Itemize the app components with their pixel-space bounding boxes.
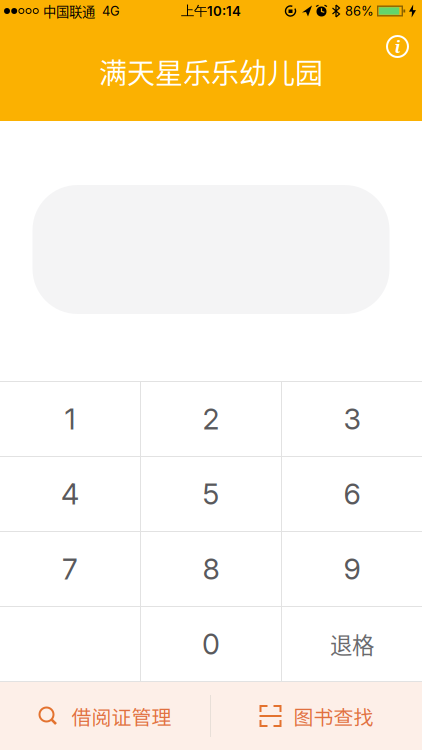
staticText: 0	[202, 627, 220, 661]
staticText: i	[394, 35, 400, 58]
staticText: 1	[64, 402, 75, 436]
button[interactable]: 0	[141, 607, 281, 681]
staticText: 8	[202, 552, 219, 586]
button[interactable]: 信息	[386, 0, 422, 58]
staticText: 满天星乐乐幼儿园	[99, 51, 323, 92]
staticText: 9	[343, 552, 360, 586]
button[interactable]: 图书查找	[211, 682, 422, 750]
button[interactable]: 5	[141, 457, 281, 531]
staticText: 6	[343, 477, 360, 511]
staticText: 上午10:14	[181, 3, 241, 19]
staticText: 3	[343, 402, 360, 436]
button[interactable]: 7	[0, 532, 140, 606]
button[interactable]: 4	[0, 457, 140, 531]
button[interactable]: 9	[282, 532, 422, 606]
staticText: 7	[62, 552, 78, 586]
staticText: 图书查找	[293, 702, 373, 730]
staticText: 借阅证管理	[71, 702, 171, 730]
staticText: 4	[61, 477, 79, 511]
button[interactable]: 1	[0, 382, 140, 456]
button[interactable]: 退格	[282, 607, 422, 681]
button[interactable]: 8	[141, 532, 281, 606]
button[interactable]: 2	[141, 382, 281, 456]
staticText: 退格	[330, 628, 374, 660]
button[interactable]: 6	[282, 457, 422, 531]
button[interactable]: 3	[282, 382, 422, 456]
staticText: 86%	[345, 3, 374, 19]
staticText: 4G	[102, 3, 120, 19]
staticText: 中国联通	[43, 1, 95, 21]
button[interactable]: 借阅证管理	[0, 682, 210, 750]
staticText: 2	[202, 402, 219, 436]
staticText: 5	[202, 477, 219, 511]
